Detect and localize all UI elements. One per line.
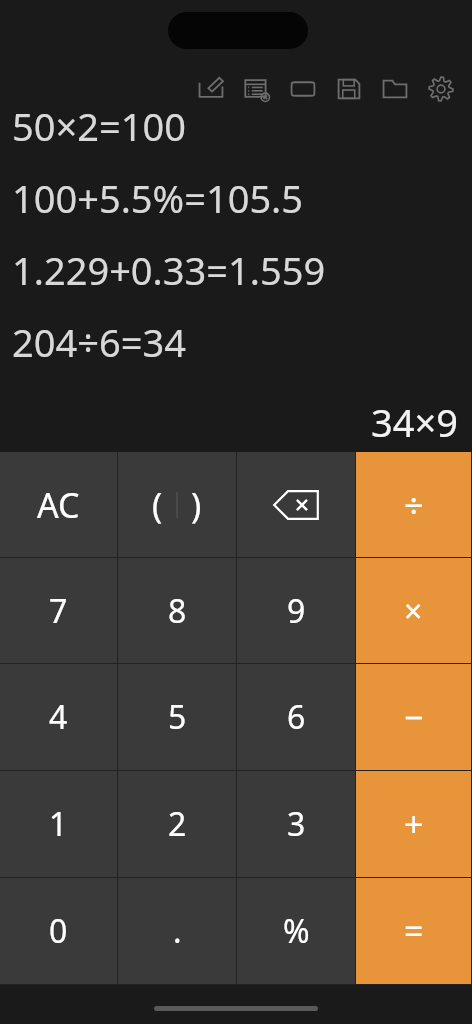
staticText: % [283,909,310,953]
staticText: 1.229+0.33=1.559 [12,244,326,296]
button[interactable]: 6 [237,664,355,770]
staticText: 1 [49,802,68,846]
staticText: 3 [287,802,306,846]
button[interactable]: + [356,771,471,877]
staticText: 0 [49,909,68,953]
staticText: 50×2=100 [12,100,186,152]
button[interactable]: Edit [188,66,234,112]
button[interactable]: % [237,878,355,984]
button[interactable]: Backspace [237,452,355,557]
button[interactable]: 2 [118,771,236,877]
button[interactable]: ÷ [356,452,471,557]
button[interactable]: Clear history [234,66,280,112]
staticText: 9 [287,589,306,633]
button[interactable]: 4 [0,664,117,770]
staticText: 7 [49,589,68,633]
staticText: 6 [287,695,306,739]
staticText: ( [152,482,163,528]
staticText: ) [191,482,202,528]
staticText: 100+5.5%=105.5 [12,172,304,224]
staticText: 204÷6=34 [12,316,186,368]
staticText: AC [37,482,80,528]
staticText: 8 [168,589,187,633]
button[interactable]: = [356,878,471,984]
button[interactable]: 3 [237,771,355,877]
staticText: 34×9 [371,396,458,448]
button[interactable]: 9 [237,558,355,663]
button[interactable]: Display mode [280,66,326,112]
staticText: ÷ [404,482,424,528]
staticText: = [404,908,424,954]
button[interactable]: 1 [0,771,117,877]
button[interactable]: 7 [0,558,117,663]
staticText: 4 [49,695,68,739]
button[interactable]: Settings [418,66,464,112]
staticText: + [404,801,424,847]
staticText: × [404,589,423,633]
button[interactable]: 8 [118,558,236,663]
button[interactable]: ( [118,452,236,557]
button[interactable]: 5 [118,664,236,770]
staticText: 2 [168,802,187,846]
staticText: . [173,909,182,953]
staticText: 5 [168,695,187,739]
staticText: − [404,694,424,740]
button[interactable]: . [118,878,236,984]
button[interactable]: Save [326,66,372,112]
button[interactable]: − [356,664,471,770]
button[interactable]: Open [372,66,418,112]
button[interactable]: AC [0,452,117,557]
button[interactable]: 0 [0,878,117,984]
button[interactable]: × [356,558,471,663]
